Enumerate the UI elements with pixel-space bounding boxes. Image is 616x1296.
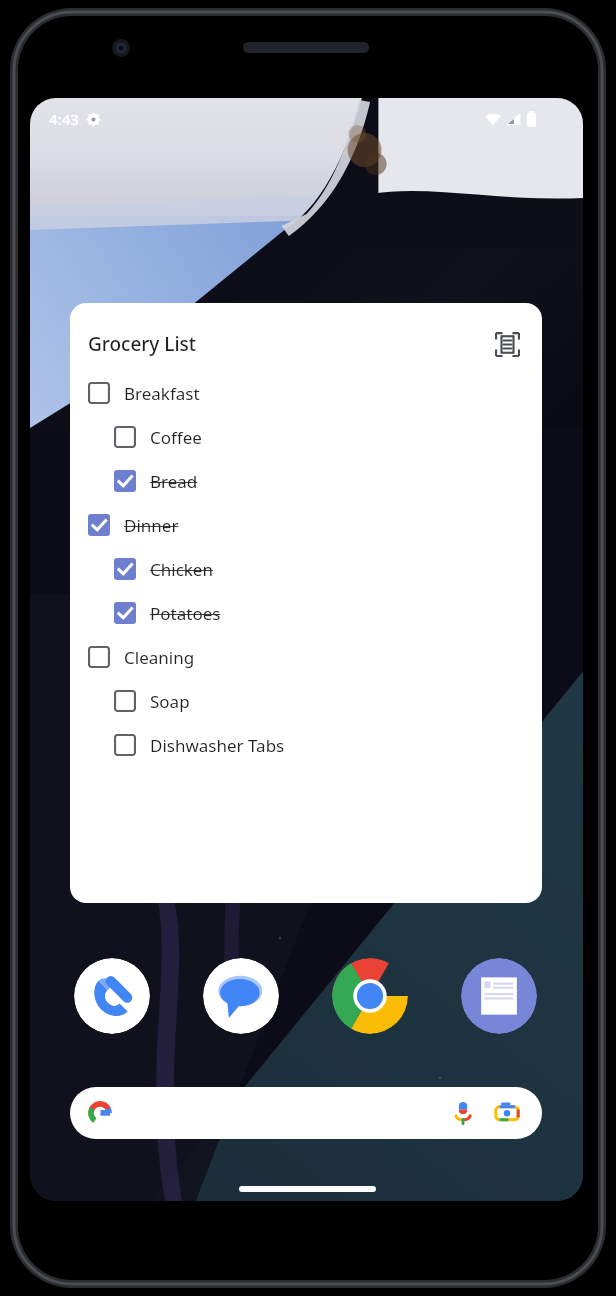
button[interactable]: Breakfast bbox=[70, 371, 542, 415]
staticText: Coffee bbox=[150, 426, 202, 449]
staticText: 4:43 bbox=[49, 109, 79, 129]
staticText: Potatoes bbox=[150, 602, 221, 625]
button[interactable]: Voice search bbox=[446, 1096, 480, 1130]
button[interactable]: Google Lens bbox=[490, 1096, 524, 1130]
button[interactable]: Coffee bbox=[70, 415, 542, 459]
button[interactable]: Potatoes bbox=[70, 591, 542, 635]
staticText: Breakfast bbox=[124, 382, 200, 405]
staticText: Bread bbox=[150, 470, 198, 493]
button[interactable]: Documents bbox=[461, 958, 537, 1034]
button[interactable]: Soap bbox=[70, 679, 542, 723]
button[interactable]: Dinner bbox=[70, 503, 542, 547]
button[interactable]: Scan document bbox=[490, 327, 524, 361]
button[interactable]: Chrome bbox=[332, 958, 408, 1034]
button[interactable]: Chicken bbox=[70, 547, 542, 591]
staticText: Cleaning bbox=[124, 646, 195, 669]
staticText: Grocery List bbox=[88, 331, 197, 357]
button[interactable]: Search bbox=[70, 1087, 542, 1139]
button[interactable]: Phone bbox=[74, 958, 150, 1034]
button[interactable]: Cleaning bbox=[70, 635, 542, 679]
staticText: Soap bbox=[150, 690, 190, 713]
staticText: Dishwasher Tabs bbox=[150, 734, 285, 757]
staticText: Chicken bbox=[150, 558, 213, 581]
button[interactable]: Messages bbox=[203, 958, 279, 1034]
button[interactable]: Dishwasher Tabs bbox=[70, 723, 542, 767]
button[interactable]: Bread bbox=[70, 459, 542, 503]
staticText: Dinner bbox=[124, 514, 179, 537]
